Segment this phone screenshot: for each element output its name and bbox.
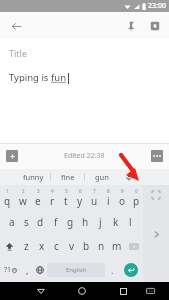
staticText: e: [35, 194, 41, 208]
staticText: w: [19, 194, 27, 208]
staticText: 1: [6, 188, 9, 194]
staticText: 7: [93, 188, 96, 194]
staticText: 2: [22, 188, 25, 194]
button[interactable]: Switch keyboard: [142, 283, 158, 299]
button[interactable]: Archive: [145, 16, 165, 36]
staticText: 8: [107, 188, 110, 194]
button[interactable]: ,: [21, 258, 33, 282]
staticText: a: [9, 215, 15, 229]
staticText: y: [77, 194, 83, 208]
button[interactable]: s: [19, 210, 33, 234]
button[interactable]: c: [49, 234, 64, 258]
staticText: Title: [9, 47, 27, 59]
staticText: ,: [26, 264, 29, 276]
staticText: f: [54, 215, 58, 229]
button[interactable]: Pin: [121, 16, 141, 36]
button[interactable]: 0: [129, 185, 143, 210]
staticText: English: [66, 266, 87, 274]
staticText: k: [113, 215, 119, 229]
button[interactable]: Enter: [119, 258, 143, 282]
button[interactable]: b: [79, 234, 94, 258]
staticText: Edited 22:38: [64, 151, 105, 161]
staticText: v: [69, 239, 75, 253]
staticText: fun: [51, 71, 67, 84]
button[interactable]: More options: [151, 150, 163, 162]
button[interactable]: gun: [85, 169, 118, 185]
staticText: d: [37, 215, 44, 229]
button[interactable]: fine: [51, 169, 84, 185]
button[interactable]: Add: [6, 150, 18, 162]
staticText: 23:00: [148, 1, 166, 11]
staticText: g: [67, 215, 74, 229]
staticText: j: [99, 215, 102, 229]
button[interactable]: Symbols: [0, 258, 21, 282]
button[interactable]: Backspace: [124, 234, 143, 258]
staticText: p: [133, 194, 140, 208]
button[interactable]: 6: [73, 185, 87, 210]
staticText: u: [91, 194, 98, 208]
button[interactable]: 7: [87, 185, 101, 210]
staticText: 4: [51, 188, 54, 194]
button[interactable]: 4: [45, 185, 59, 210]
staticText: z: [24, 239, 29, 253]
staticText: x: [39, 239, 45, 253]
button[interactable]: v: [64, 234, 79, 258]
staticText: 9: [121, 188, 124, 194]
staticText: ?1: [4, 265, 12, 275]
button[interactable]: 8: [101, 185, 115, 210]
button[interactable]: 3: [30, 185, 45, 210]
button[interactable]: Change language: [33, 258, 47, 282]
button[interactable]: 1: [0, 185, 15, 210]
staticText: q: [4, 194, 11, 208]
button[interactable]: Move keyboard right: [148, 226, 164, 242]
button[interactable]: z: [19, 234, 34, 258]
button[interactable]: h: [78, 210, 93, 234]
staticText: l: [129, 215, 132, 229]
button[interactable]: x: [34, 234, 49, 258]
button[interactable]: n: [94, 234, 109, 258]
staticText: 6: [79, 188, 82, 194]
button[interactable]: m: [109, 234, 124, 258]
staticText: Typing is: [9, 71, 51, 84]
button[interactable]: Resize keyboard: [149, 188, 163, 202]
staticText: .: [111, 264, 114, 276]
button[interactable]: Home: [74, 283, 90, 299]
button[interactable]: 5: [59, 185, 73, 210]
button[interactable]: Back: [33, 283, 49, 299]
button[interactable]: 2: [15, 185, 30, 210]
button[interactable]: g: [63, 210, 78, 234]
staticText: c: [54, 239, 59, 253]
button[interactable]: Voice input: [122, 170, 136, 184]
staticText: fine: [61, 172, 75, 182]
button[interactable]: 9: [115, 185, 129, 210]
staticText: s: [24, 215, 29, 229]
button[interactable]: .: [105, 258, 119, 282]
button[interactable]: j: [93, 210, 108, 234]
button[interactable]: funny: [17, 169, 50, 185]
staticText: gun: [95, 172, 109, 182]
staticText: o: [119, 194, 126, 208]
button[interactable]: English: [47, 263, 105, 277]
staticText: 5: [65, 188, 68, 194]
button[interactable]: a: [5, 210, 19, 234]
staticText: h: [82, 215, 89, 229]
button[interactable]: f: [48, 210, 63, 234]
staticText: t: [64, 194, 68, 208]
button[interactable]: Back: [6, 16, 26, 36]
staticText: b: [83, 239, 90, 253]
button[interactable]: d: [33, 210, 48, 234]
staticText: funny: [23, 172, 44, 182]
button[interactable]: Shift: [0, 234, 19, 258]
button[interactable]: l: [123, 210, 138, 234]
staticText: r: [50, 194, 55, 208]
staticText: 0: [135, 188, 138, 194]
button[interactable]: k: [108, 210, 123, 234]
button[interactable]: Recents: [115, 283, 131, 299]
staticText: i: [107, 194, 110, 208]
staticText: n: [98, 239, 105, 253]
staticText: 3: [37, 188, 40, 194]
staticText: m: [112, 239, 122, 253]
